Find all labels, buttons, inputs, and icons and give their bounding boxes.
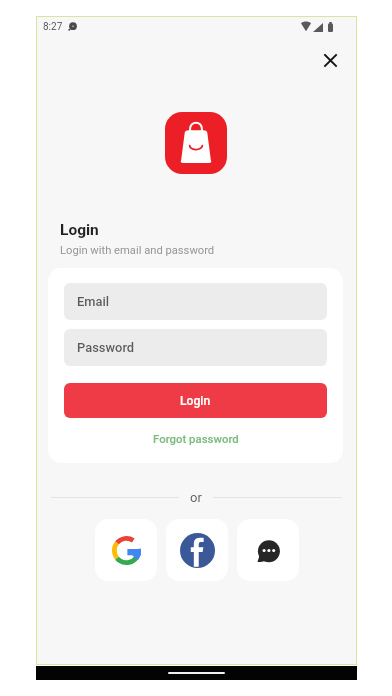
button[interactable]: Sign in with Google [95,519,157,581]
staticText: Forgot password [153,432,239,445]
button[interactable]: Password [64,329,327,366]
staticText: or [190,490,202,505]
staticText: Login [180,394,211,408]
staticText: Email [77,294,110,309]
staticText: Login [60,221,99,239]
staticText: Password [77,340,135,355]
staticText: 8:27 [43,21,63,33]
button[interactable]: Close [314,44,346,76]
button[interactable]: Login [64,383,327,418]
button[interactable]: Sign in with Facebook [166,519,228,581]
button[interactable]: Forgot password [64,426,327,450]
staticText: Login with email and password [60,244,215,257]
button[interactable]: Email [64,283,327,320]
button[interactable]: Sign in with chat [237,519,299,581]
